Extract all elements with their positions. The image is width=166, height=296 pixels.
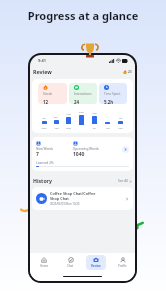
staticText: 24 xyxy=(74,99,80,104)
staticText: 5.2h xyxy=(104,99,114,104)
staticText: Coffee Shop Chat/Coffee Shop Chat xyxy=(50,191,96,201)
staticText: 15m xyxy=(66,113,71,116)
staticText: Sun xyxy=(118,126,123,129)
button[interactable]: More xyxy=(122,146,129,153)
staticText: Upcoming Words xyxy=(73,147,99,151)
staticText: Wed xyxy=(66,126,71,129)
staticText: Sat xyxy=(106,126,110,129)
staticText: 6m xyxy=(54,116,58,119)
staticText: Chat xyxy=(67,264,74,268)
staticText: Streak xyxy=(43,92,53,96)
staticText: See All xyxy=(118,179,128,183)
staticText: 9:41 xyxy=(38,58,46,63)
button[interactable]: Interactions xyxy=(69,83,97,104)
button[interactable]: Time Spent xyxy=(99,83,127,104)
staticText: New Words xyxy=(36,147,54,151)
staticText: Learned 2% xyxy=(36,161,54,165)
staticText: Fri xyxy=(93,126,96,129)
button[interactable]: See All xyxy=(118,179,132,183)
staticText: Review xyxy=(33,68,52,75)
staticText: Home xyxy=(40,264,48,268)
staticText: 5m xyxy=(119,117,123,120)
staticText: 12 xyxy=(43,99,49,104)
button[interactable]: Profile xyxy=(109,253,135,271)
staticText: 4m xyxy=(42,117,46,120)
staticText: Progress at a glance xyxy=(0,8,166,23)
staticText: Mon xyxy=(41,126,47,129)
staticText: Time Spent xyxy=(104,92,121,96)
staticText: 1040 xyxy=(73,151,85,158)
staticText: 2025/06/01 Mon 13:20 xyxy=(50,202,80,206)
staticText: History xyxy=(33,177,52,184)
button[interactable]: Streak xyxy=(38,83,67,104)
staticText: Interactions xyxy=(74,92,92,96)
staticText: Profile xyxy=(118,264,127,268)
staticText: Tue xyxy=(54,126,59,129)
button[interactable]: Review xyxy=(83,253,109,271)
button[interactable]: Chat xyxy=(57,253,83,271)
staticText: 20m xyxy=(79,111,84,114)
button[interactable]: Home xyxy=(30,253,57,271)
button[interactable]: Coffee Shop Chat/Coffee Shop Chat xyxy=(32,187,133,210)
staticText: 23 xyxy=(128,70,132,74)
staticText: Review xyxy=(91,264,101,268)
staticText: 15m xyxy=(92,112,97,115)
staticText: 7 xyxy=(36,151,39,158)
